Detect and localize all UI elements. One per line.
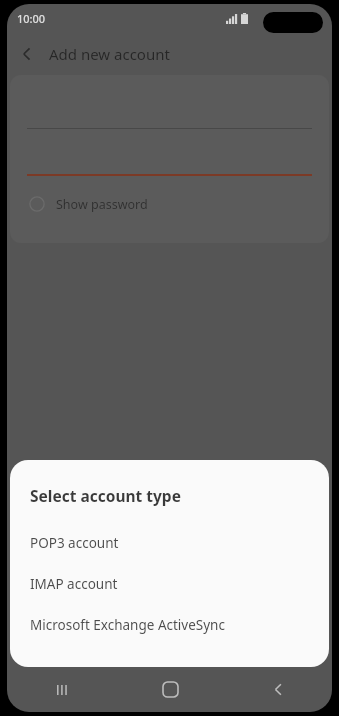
button[interactable]: IMAP account — [10, 563, 329, 604]
staticText: Select account type — [30, 485, 181, 506]
staticText: Add new account — [49, 44, 170, 64]
button[interactable]: POP3 account — [10, 522, 329, 563]
staticText: Show password — [56, 196, 148, 213]
button[interactable]: Navigate up — [7, 34, 47, 74]
staticText: IMAP account — [30, 575, 118, 593]
staticText: POP3 account — [30, 534, 119, 552]
button[interactable]: Show password — [10, 189, 329, 219]
staticText: Microsoft Exchange ActiveSync — [30, 616, 225, 634]
button[interactable]: Recents — [7, 667, 116, 712]
button[interactable]: Microsoft Exchange ActiveSync — [10, 604, 329, 645]
button[interactable]: Home — [116, 667, 224, 712]
staticText: 10:00 — [17, 11, 46, 26]
button[interactable]: Back — [224, 667, 332, 712]
